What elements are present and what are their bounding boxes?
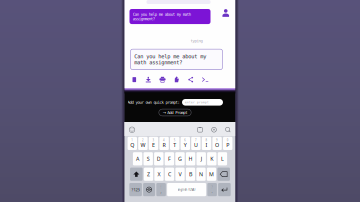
- staticText: P: [226, 141, 229, 148]
- button[interactable]: 5: [170, 137, 179, 150]
- button[interactable]: Download: [145, 76, 151, 83]
- button[interactable]: Stickers: [210, 126, 217, 133]
- button[interactable]: Copy: [131, 76, 137, 83]
- staticText: H: [189, 155, 193, 162]
- button[interactable]: Like: [174, 76, 180, 83]
- staticText: 3: [152, 138, 154, 142]
- staticText: L: [221, 155, 224, 162]
- staticText: ,: [161, 188, 162, 194]
- button[interactable]: 0: [223, 137, 232, 150]
- button[interactable]: Prompt: [202, 76, 209, 83]
- staticText: Add your own quick prompt:: [127, 100, 179, 104]
- button[interactable]: Search: [224, 126, 231, 133]
- button[interactable]: Emoji keyboard: [143, 183, 155, 196]
- staticText: 5: [174, 138, 176, 142]
- button[interactable]: D: [154, 152, 163, 165]
- button[interactable]: N: [196, 168, 206, 181]
- staticText: F: [168, 155, 171, 162]
- button[interactable]: M: [207, 168, 216, 181]
- button[interactable]: 8: [202, 137, 211, 150]
- button[interactable]: enter prompt: [182, 99, 223, 106]
- staticText: N: [199, 171, 203, 178]
- staticText: enter prompt: [185, 101, 209, 104]
- staticText: 1: [131, 138, 133, 142]
- staticText: 9: [216, 138, 218, 142]
- button[interactable]: 7: [191, 137, 201, 150]
- staticText: G: [178, 155, 182, 162]
- staticText: English (USA): [178, 188, 196, 191]
- staticText: J: [201, 155, 202, 162]
- staticText: 6: [184, 138, 186, 142]
- button[interactable]: English (USA): [167, 183, 206, 196]
- staticText: M: [209, 171, 214, 178]
- button[interactable]: Shift: [130, 168, 143, 181]
- button[interactable]: L: [218, 152, 227, 165]
- button[interactable]: X: [154, 168, 164, 181]
- staticText: C: [168, 171, 171, 178]
- button[interactable]: G: [175, 152, 185, 165]
- staticText: Add Prompt: [167, 110, 187, 115]
- staticText: 7: [195, 138, 197, 142]
- staticText: D: [157, 155, 161, 162]
- staticText: Q: [130, 141, 134, 148]
- button[interactable]: →: [159, 109, 191, 116]
- button[interactable]: !: [156, 183, 166, 196]
- staticText: Can you help me about my math assignment…: [134, 53, 206, 65]
- button[interactable]: A: [133, 152, 142, 165]
- staticText: .: [212, 188, 213, 194]
- button[interactable]: 2: [138, 137, 148, 150]
- button[interactable]: 9: [212, 137, 222, 150]
- staticText: B: [189, 171, 192, 178]
- button[interactable]: H: [186, 152, 195, 165]
- button[interactable]: Clipboard: [196, 126, 203, 133]
- staticText: ?123: [132, 187, 140, 192]
- staticText: E: [152, 141, 155, 148]
- button[interactable]: C: [165, 168, 174, 181]
- button[interactable]: K: [207, 152, 216, 165]
- button[interactable]: Delete: [217, 168, 230, 181]
- staticText: T: [173, 141, 176, 148]
- staticText: ?: [212, 186, 213, 189]
- staticText: 0: [227, 138, 229, 142]
- staticText: Z: [147, 171, 150, 178]
- staticText: K: [210, 155, 213, 162]
- staticText: I: [205, 141, 207, 148]
- staticText: A: [136, 155, 139, 162]
- staticText: W: [140, 141, 145, 148]
- staticText: X: [157, 171, 160, 178]
- button[interactable]: B: [186, 168, 195, 181]
- button[interactable]: ?123: [129, 183, 142, 196]
- staticText: R: [163, 141, 166, 148]
- button[interactable]: Print: [159, 76, 166, 83]
- button[interactable]: J: [196, 152, 206, 165]
- staticText: →: [163, 110, 166, 115]
- staticText: V: [178, 171, 181, 178]
- button[interactable]: 3: [149, 137, 158, 150]
- button[interactable]: 6: [181, 137, 190, 150]
- button[interactable]: 1: [128, 137, 137, 150]
- staticText: S: [147, 155, 150, 162]
- button[interactable]: F: [165, 152, 174, 165]
- staticText: 8: [205, 138, 207, 142]
- staticText: U: [194, 141, 198, 148]
- staticText: Y: [184, 141, 187, 148]
- button[interactable]: ?: [207, 183, 217, 196]
- button[interactable]: Return: [218, 183, 231, 196]
- button[interactable]: 4: [159, 137, 169, 150]
- staticText: typing: [190, 39, 202, 43]
- button[interactable]: S: [143, 152, 153, 165]
- button[interactable]: Z: [144, 168, 153, 181]
- button[interactable]: V: [175, 168, 185, 181]
- staticText: 2: [142, 138, 144, 142]
- button[interactable]: Share: [188, 76, 194, 83]
- button[interactable]: Emoji: [128, 126, 135, 133]
- staticText: 4: [163, 138, 165, 142]
- staticText: O: [215, 141, 219, 148]
- staticText: Can you help me about my math assignment…: [133, 12, 191, 21]
